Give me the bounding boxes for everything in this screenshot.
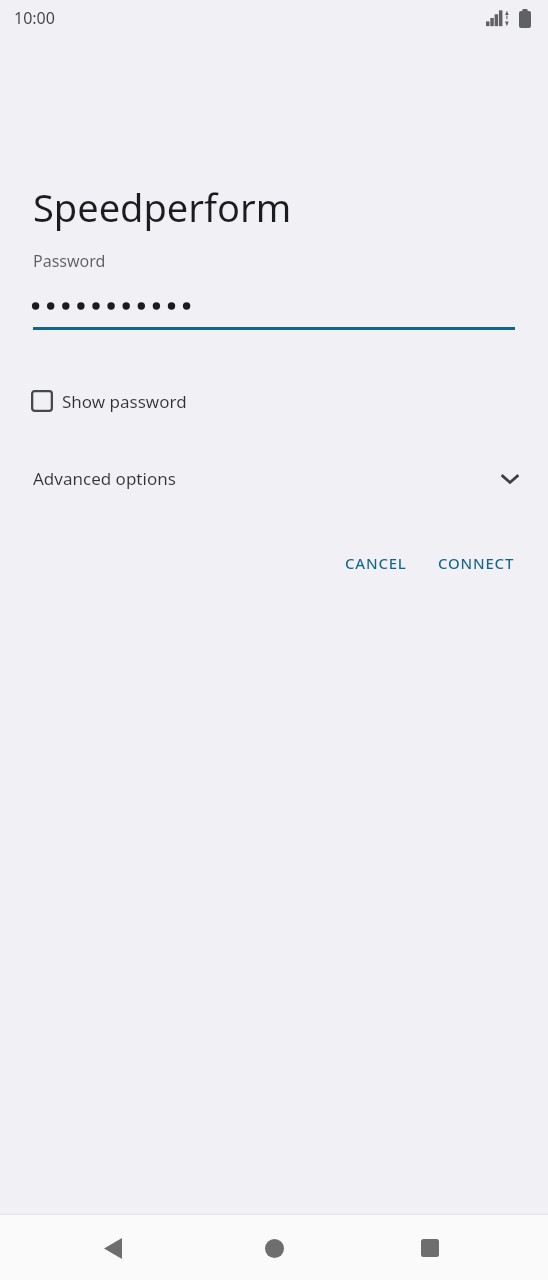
- button[interactable]: Back: [91, 1226, 135, 1270]
- button[interactable]: CANCEL: [335, 545, 417, 581]
- button[interactable]: CONNECT: [428, 545, 525, 581]
- staticText: Show password: [62, 390, 187, 413]
- staticText: Advanced options: [33, 467, 176, 490]
- button[interactable]: Recent apps: [408, 1226, 452, 1270]
- button[interactable]: [33, 289, 515, 330]
- button[interactable]: Advanced options: [0, 458, 548, 498]
- staticText: CANCEL: [345, 553, 407, 573]
- staticText: Speedperform: [33, 181, 292, 233]
- staticText: CONNECT: [438, 553, 515, 573]
- staticText: Password: [33, 250, 106, 272]
- staticText: 10:00: [14, 7, 55, 29]
- button[interactable]: Show password: [31, 384, 187, 418]
- button[interactable]: Home: [252, 1226, 296, 1270]
